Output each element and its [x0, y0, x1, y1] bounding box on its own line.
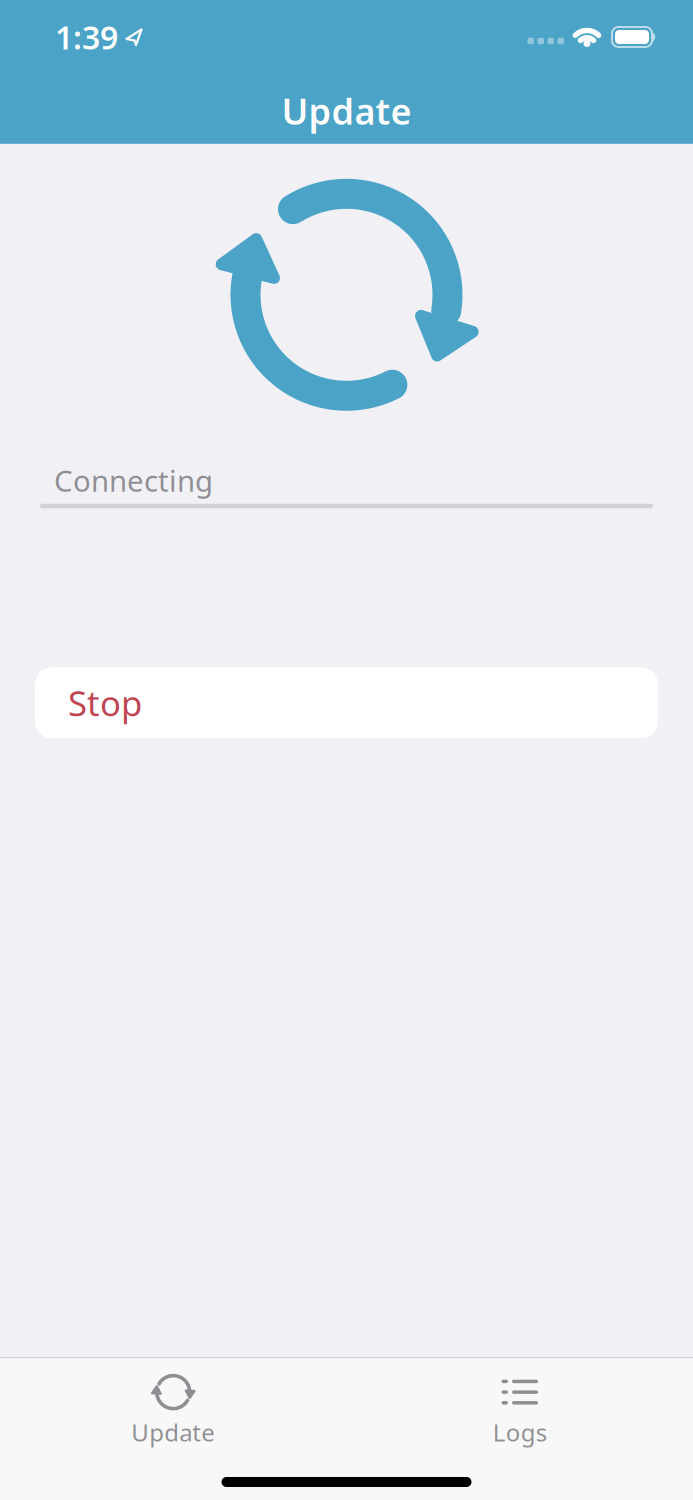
button[interactable]: Logs	[346, 1370, 693, 1448]
staticText: Update	[131, 1416, 215, 1448]
staticText: Logs	[493, 1416, 547, 1448]
staticText: 1:39	[55, 16, 118, 58]
staticText: Update	[281, 87, 411, 135]
button[interactable]: Update	[0, 1370, 346, 1448]
staticText: Connecting	[54, 461, 213, 500]
button[interactable]: Stop	[35, 667, 658, 738]
staticText: Stop	[68, 680, 142, 726]
